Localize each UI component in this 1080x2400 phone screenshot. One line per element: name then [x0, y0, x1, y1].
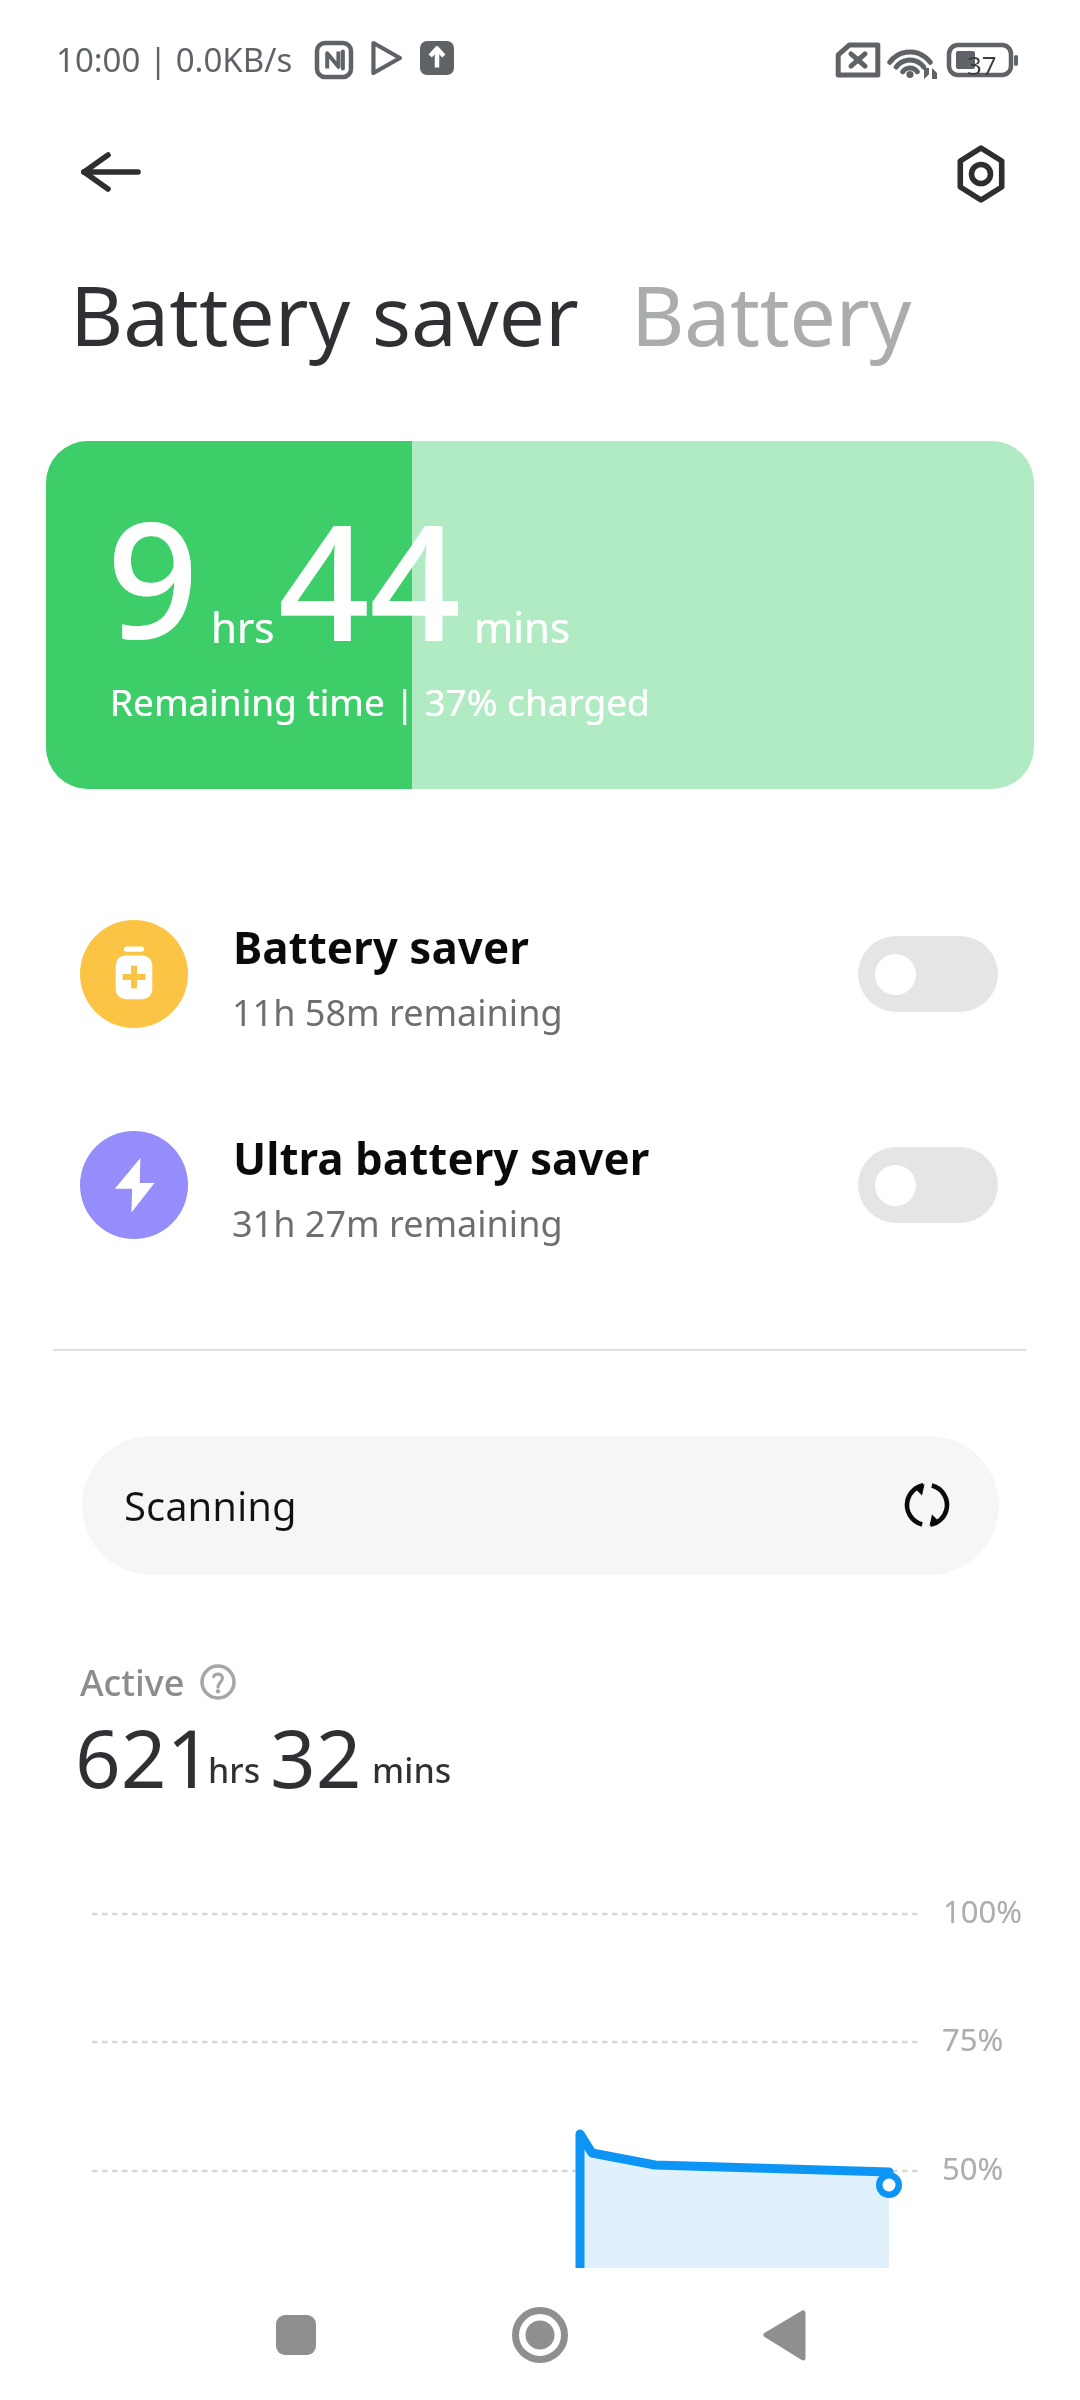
staticText: Battery saver — [70, 258, 579, 370]
staticText: 37 — [967, 47, 997, 82]
staticText: 621 — [75, 1702, 213, 1811]
button[interactable]: Recents — [241, 2280, 351, 2390]
staticText: 10:00 | 0.0KB/s — [56, 37, 293, 82]
staticText: hrs — [211, 598, 275, 655]
button[interactable]: Settings — [916, 84, 1046, 214]
button[interactable]: Back — [45, 82, 175, 212]
staticText: 11h 58m remaining — [232, 988, 563, 1037]
staticText: 44 — [278, 470, 462, 688]
staticText: Ultra battery saver — [233, 1128, 650, 1188]
button[interactable]: Battery saver — [0, 898, 1080, 1050]
staticText: Battery saver — [233, 917, 529, 977]
staticText: 32 — [270, 1702, 362, 1811]
button[interactable]: Scanning — [82, 1436, 999, 1575]
staticText: Active — [80, 1658, 185, 1707]
staticText: 50% — [942, 2147, 1004, 2189]
button[interactable]: Ultra battery saver — [0, 1109, 1080, 1261]
button[interactable]: Back — [734, 2280, 844, 2390]
button[interactable] — [46, 441, 1034, 789]
staticText: Scanning — [124, 1478, 297, 1532]
staticText: mins — [372, 1747, 452, 1793]
staticText: hrs — [208, 1747, 261, 1793]
staticText: mins — [474, 598, 571, 655]
staticText: Battery — [631, 258, 912, 370]
button[interactable]: Toggle Battery saver — [858, 936, 998, 1012]
staticText: 9 — [107, 467, 199, 685]
staticText: 100% — [943, 1890, 1022, 1932]
button[interactable]: Toggle Ultra battery saver — [858, 1147, 998, 1223]
staticText: 31h 27m remaining — [232, 1199, 563, 1248]
staticText: Remaining time | 37% charged — [110, 676, 650, 726]
button[interactable]: Home — [485, 2280, 595, 2390]
staticText: 75% — [942, 2018, 1004, 2060]
